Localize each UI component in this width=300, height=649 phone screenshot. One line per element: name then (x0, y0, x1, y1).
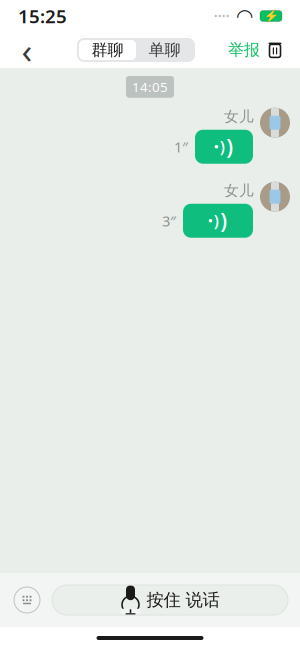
staticText: 15:25 (18, 4, 67, 28)
button[interactable]: Back (10, 33, 44, 67)
button[interactable]: 单聊 (136, 40, 193, 60)
staticText: ) (214, 210, 219, 231)
button[interactable]: Play voice message 1″ (195, 130, 253, 164)
button[interactable]: 群聊 (79, 40, 136, 60)
staticText: ⚡ (263, 9, 278, 23)
button[interactable]: 举报 (228, 35, 260, 65)
staticText: 女儿 (224, 182, 254, 200)
staticText: ) (220, 207, 227, 235)
staticText: 按住 说话 (146, 589, 219, 611)
staticText: 单聊 (148, 40, 180, 60)
staticText: 女儿 (224, 108, 254, 126)
staticText: 群聊 (91, 40, 123, 60)
staticText: ) (226, 133, 233, 161)
staticText: ‹ (21, 27, 32, 73)
staticText: 14:05 (132, 78, 168, 96)
staticText: ◠ (237, 5, 252, 27)
staticText: 3″ (162, 211, 176, 230)
button[interactable]: Delete (260, 35, 290, 65)
button[interactable]: Keyboard (12, 585, 42, 615)
button[interactable]: Play voice message 3″ (183, 204, 253, 238)
staticText: 1″ (174, 137, 188, 156)
button[interactable]: 按住 说话 (52, 585, 288, 615)
staticText: ) (220, 136, 225, 157)
staticText: 举报 (228, 40, 260, 60)
